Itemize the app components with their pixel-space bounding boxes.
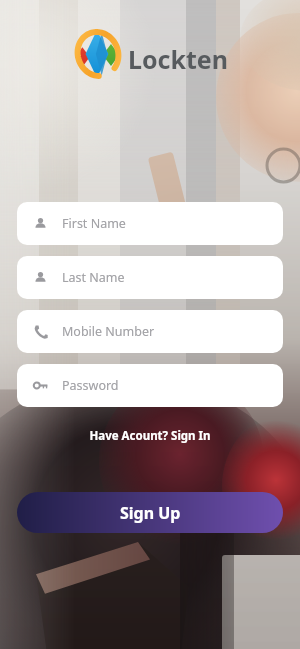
button[interactable]: Have Acount? Sign In: [83, 425, 217, 447]
staticText: Password: [62, 377, 119, 394]
button[interactable]: Mobile Number: [17, 310, 283, 353]
button[interactable]: Last Name: [17, 256, 283, 299]
staticText: Mobile Number: [62, 323, 155, 340]
button[interactable]: First Name: [17, 202, 283, 245]
button[interactable]: Password: [17, 364, 283, 407]
staticText: First Name: [62, 215, 126, 232]
staticText: Sign Up: [120, 502, 181, 524]
staticText: Lockten: [128, 42, 229, 76]
staticText: Last Name: [62, 269, 125, 286]
button[interactable]: Sign Up: [17, 492, 283, 533]
